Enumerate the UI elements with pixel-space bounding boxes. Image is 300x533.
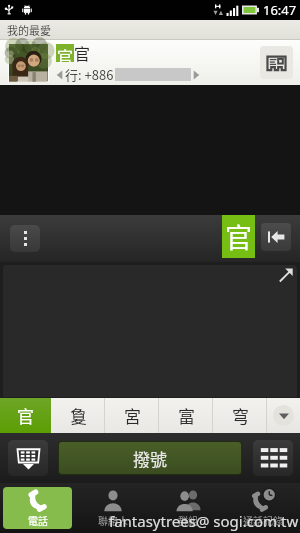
staticText: 電話	[28, 513, 48, 527]
staticText: 群組	[178, 513, 198, 527]
staticText: 撥號	[133, 446, 167, 471]
button[interactable]: 官	[0, 398, 51, 433]
button[interactable]: 官	[0, 40, 300, 85]
button[interactable]: 敻	[51, 398, 105, 433]
button[interactable]: 群組	[153, 487, 222, 529]
button[interactable]: Dial pad	[253, 440, 293, 476]
staticText: 行: +886	[65, 65, 114, 84]
staticText: 官	[17, 403, 34, 428]
staticText: fantasytrees@ sogi.com.tw	[109, 511, 299, 531]
button[interactable]: Menu	[10, 225, 40, 252]
button[interactable]: 電話	[3, 487, 72, 529]
button[interactable]: Expand panel	[278, 268, 293, 283]
button[interactable]: Backspace	[261, 223, 291, 251]
staticText: 官	[57, 44, 74, 62]
button[interactable]: 官	[222, 215, 255, 258]
staticText: 16:47	[263, 1, 297, 19]
staticText: 宮	[124, 403, 141, 428]
button[interactable]: 撥號	[59, 442, 241, 474]
button[interactable]: Contact card	[260, 46, 293, 79]
staticText: 通話記錄	[243, 513, 283, 527]
staticText: 富	[178, 403, 195, 428]
staticText: 穹	[232, 403, 249, 428]
button[interactable]: 通話記錄	[228, 487, 297, 529]
staticText: 官	[74, 41, 91, 64]
button[interactable]: 聯絡人	[78, 487, 147, 529]
button[interactable]: Hide keyboard	[8, 440, 48, 476]
button[interactable]: 宮	[105, 398, 159, 433]
staticText: 我的最愛	[7, 22, 51, 38]
staticText: 敻	[70, 403, 87, 428]
button[interactable]: More candidates	[267, 398, 300, 433]
button[interactable]: 富	[159, 398, 213, 433]
staticText: 官	[225, 217, 252, 256]
button[interactable]: 穹	[213, 398, 267, 433]
staticText: 聯絡人	[98, 513, 128, 527]
